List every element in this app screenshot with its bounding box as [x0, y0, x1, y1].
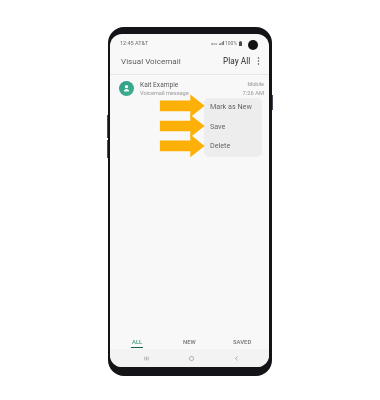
- button[interactable]: Recents: [139, 349, 153, 367]
- button[interactable]: Mark as New: [204, 98, 262, 118]
- staticText: aov: [211, 41, 218, 46]
- button[interactable]: Home: [184, 349, 198, 367]
- staticText: 12:45 AT&T: [120, 40, 149, 46]
- staticText: NEW: [183, 339, 196, 346]
- staticText: Play All: [223, 56, 251, 66]
- staticText: Mobile: [210, 81, 264, 87]
- staticText: 7:26 AM: [210, 90, 264, 97]
- button[interactable]: Back: [229, 349, 243, 367]
- button[interactable]: NEW: [163, 339, 216, 353]
- button[interactable]: SAVED: [216, 339, 269, 353]
- button[interactable]: More options: [252, 52, 264, 69]
- staticText: Save: [210, 122, 226, 130]
- staticText: Visual Voicemail: [121, 56, 181, 65]
- button[interactable]: Kait Example: [110, 75, 269, 102]
- staticText: Delete: [210, 141, 231, 149]
- button[interactable]: Play All: [220, 53, 254, 69]
- button[interactable]: ALL: [110, 339, 163, 353]
- staticText: Voicemail message: [140, 90, 189, 97]
- staticText: SAVED: [233, 339, 252, 346]
- button[interactable]: Delete: [204, 137, 262, 157]
- button[interactable]: Save: [204, 118, 262, 138]
- staticText: 100%: [225, 40, 238, 46]
- staticText: Mark as New: [210, 102, 252, 110]
- staticText: ALL: [132, 339, 143, 346]
- staticText: Kait Example: [140, 81, 179, 89]
